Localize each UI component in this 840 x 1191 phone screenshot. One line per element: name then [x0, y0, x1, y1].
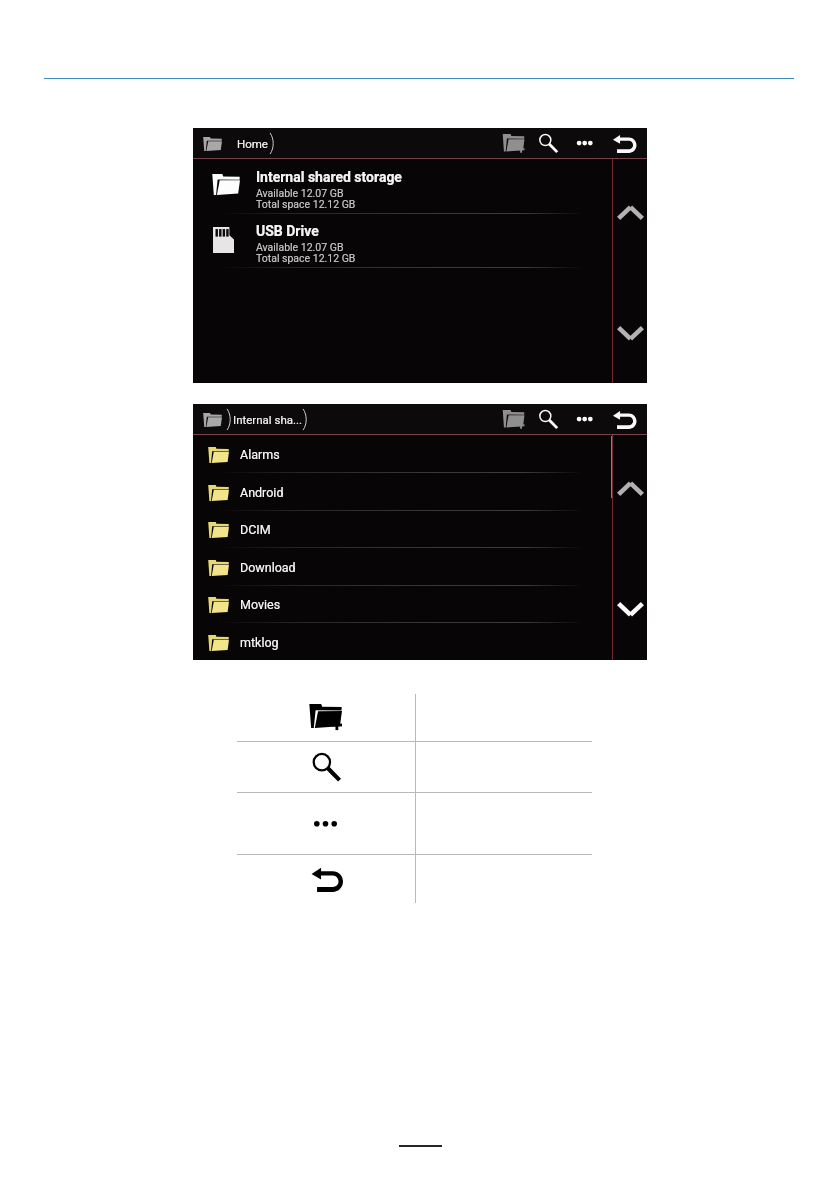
button[interactable]: Alarms [193, 435, 647, 473]
staticText: Internal shared storage [256, 169, 402, 185]
button[interactable]: Search [524, 404, 559, 435]
button[interactable]: USB Drive [193, 214, 647, 268]
staticText: Android [240, 485, 284, 500]
button[interactable]: Internal shared storage [193, 160, 647, 214]
button[interactable]: mtklog [193, 623, 647, 660]
button[interactable]: Scroll up [617, 204, 644, 221]
button[interactable]: More options [562, 404, 597, 435]
button[interactable]: New folder [488, 128, 523, 159]
staticText: USB Drive [256, 223, 319, 239]
staticText: Total space 12.12 GB [256, 252, 356, 264]
staticText: Available 12.07 GB [256, 187, 344, 199]
staticText: Available 12.07 GB [256, 241, 344, 253]
staticText: DCIM [240, 522, 271, 537]
button[interactable]: More options [562, 128, 597, 159]
staticText: Movies [240, 597, 281, 612]
button[interactable]: Search [524, 128, 559, 159]
button[interactable]: Scroll up [617, 480, 644, 497]
staticText: Internal sha... [233, 413, 303, 426]
button[interactable]: Back [599, 128, 634, 159]
button[interactable]: Movies [193, 585, 647, 623]
button[interactable]: Back [599, 404, 634, 435]
staticText: Download [240, 560, 296, 575]
button[interactable]: New folder [488, 404, 523, 435]
staticText: Total space 12.12 GB [256, 198, 356, 210]
button[interactable]: Scroll down [617, 325, 644, 342]
button[interactable]: Download [193, 548, 647, 586]
staticText: Alarms [240, 447, 280, 462]
button[interactable]: DCIM [193, 510, 647, 548]
staticText: Home [237, 137, 268, 150]
button[interactable]: Scroll down [617, 601, 644, 618]
staticText: mtklog [240, 635, 279, 650]
button[interactable]: Android [193, 473, 647, 511]
